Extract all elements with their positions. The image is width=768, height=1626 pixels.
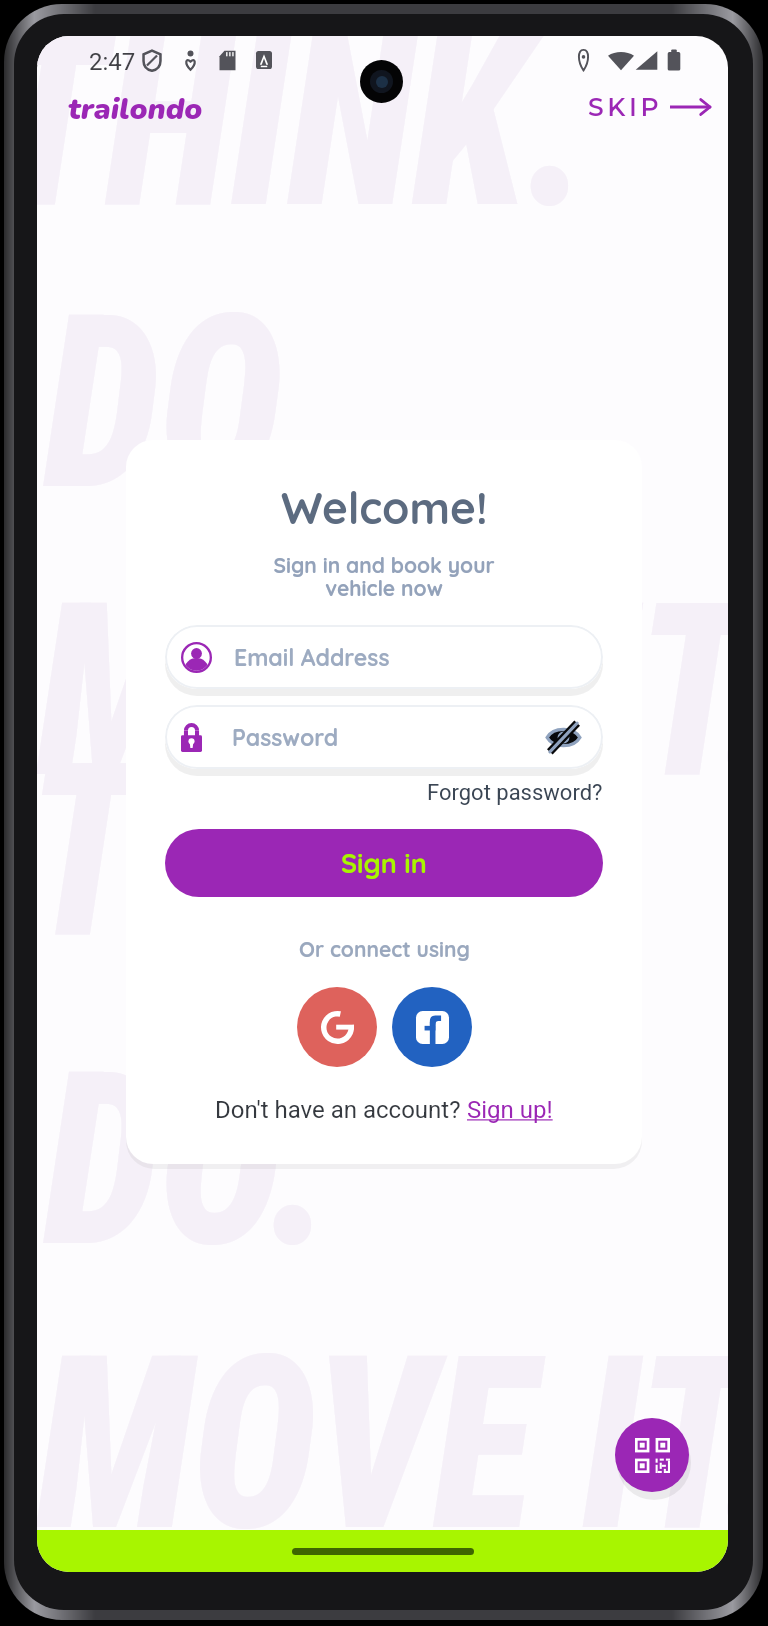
button[interactable]: Sign in with Google xyxy=(297,987,377,1067)
staticText: Sign in and book your vehicle now xyxy=(273,552,495,602)
staticText: Welcome! xyxy=(281,480,488,535)
staticText: MOVE IT. xyxy=(37,551,645,832)
button[interactable]: Sign in with Facebook xyxy=(392,987,472,1067)
button[interactable]: Sign in xyxy=(165,829,603,897)
staticText: Don't have an account? xyxy=(215,1096,467,1124)
button[interactable]: Password xyxy=(165,705,603,769)
button[interactable]: Forgot password? xyxy=(427,780,603,806)
staticText: 2:47 xyxy=(89,48,136,76)
button[interactable]: Sign up! xyxy=(467,1096,553,1124)
button[interactable]: Scan QR code xyxy=(615,1418,689,1492)
button[interactable]: SKIP xyxy=(578,82,720,132)
staticText: DO. xyxy=(44,1020,333,1301)
button[interactable]: trailondo xyxy=(68,89,203,130)
button[interactable]: Email Address xyxy=(165,625,603,689)
staticText: T xyxy=(37,711,141,992)
staticText: THINK. xyxy=(37,36,589,262)
staticText: SKIP xyxy=(588,92,663,122)
staticText: DO. xyxy=(44,263,333,544)
staticText: Or connect using xyxy=(299,936,470,962)
staticText: MOVE IT. xyxy=(37,1304,645,1572)
staticText: Password xyxy=(232,723,339,752)
staticText: Sign in xyxy=(341,846,427,880)
staticText: Email Address xyxy=(234,643,390,672)
